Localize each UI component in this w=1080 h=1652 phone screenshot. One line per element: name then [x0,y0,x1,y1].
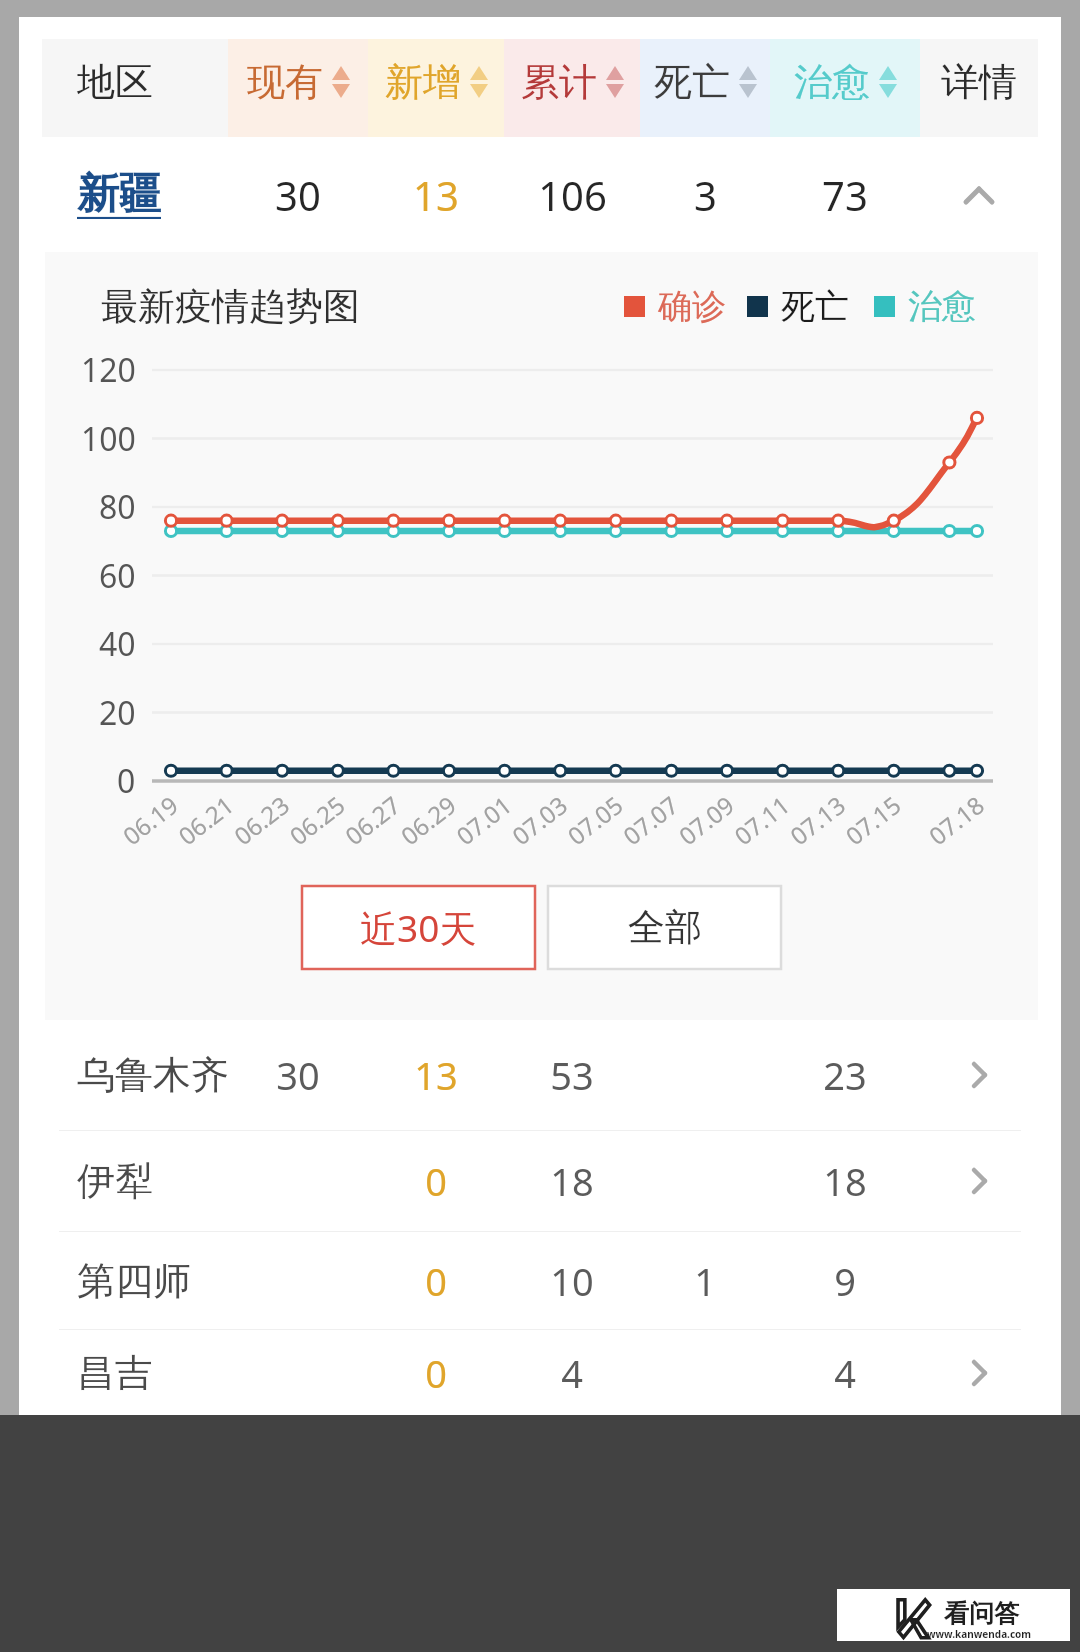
staticText: 3 [694,168,717,222]
staticText: 死亡 [654,58,730,106]
staticText: 治愈 [794,58,870,106]
other: Details [957,1053,1001,1097]
button[interactable]: 伊犁 [42,1131,1038,1231]
staticText: 乌鲁木齐 [77,1051,229,1099]
button[interactable]: 死亡 [640,39,770,137]
button[interactable]: 第四师 [42,1232,1038,1329]
staticText: 23 [823,1049,867,1101]
staticText: 30 [276,1049,320,1101]
button[interactable]: 昌吉 [42,1330,1038,1415]
staticText: 4 [561,1347,583,1399]
other: Details [957,1351,1001,1395]
staticText: 新增 [385,58,461,106]
staticText: 伊犁 [77,1157,153,1205]
staticText: 18 [823,1155,867,1207]
staticText: 死亡 [781,285,849,328]
staticText: 73 [822,168,868,222]
staticText: 106 [538,168,607,222]
staticText: 治愈 [908,285,976,328]
staticText: 确诊 [658,285,726,328]
staticText: 全部 [628,904,702,951]
staticText: 最新疫情趋势图 [101,283,360,330]
staticText: 13 [414,1049,458,1101]
staticText: 第四师 [77,1257,191,1305]
staticText: 4 [834,1347,856,1399]
button[interactable]: 详情 [920,39,1038,137]
button[interactable]: 乌鲁木齐 [42,1020,1038,1130]
button[interactable]: 治愈 [770,39,920,137]
staticText: www.kanwenda.com [927,1627,1032,1641]
staticText: 9 [834,1255,856,1307]
staticText: 详情 [941,58,1017,106]
staticText: 现有 [247,58,323,106]
other: Details [957,1159,1001,1203]
button[interactable]: 现有 [228,39,368,137]
staticText: 1 [694,1255,716,1307]
button[interactable]: 新疆 [42,137,1038,252]
button[interactable]: 全部 [548,886,781,969]
button[interactable]: 近30天 [302,886,535,969]
other: Collapse [957,173,1001,217]
button[interactable]: 累计 [504,39,640,137]
staticText: 近30天 [360,902,477,953]
button[interactable]: 新增 [368,39,504,137]
button[interactable]: 地区 [42,39,228,137]
staticText: 地区 [77,58,153,106]
staticText: 0 [425,1255,447,1307]
staticText: 累计 [521,58,597,106]
staticText: 昌吉 [77,1349,153,1397]
staticText: 新疆 [77,168,161,221]
staticText: 0 [425,1347,447,1399]
staticText: 看问答 [944,1598,1019,1629]
staticText: 13 [413,168,459,222]
staticText: 30 [275,168,321,222]
staticText: 0 [425,1155,447,1207]
staticText: 18 [550,1155,594,1207]
staticText: 10 [550,1255,594,1307]
staticText: 53 [550,1049,594,1101]
